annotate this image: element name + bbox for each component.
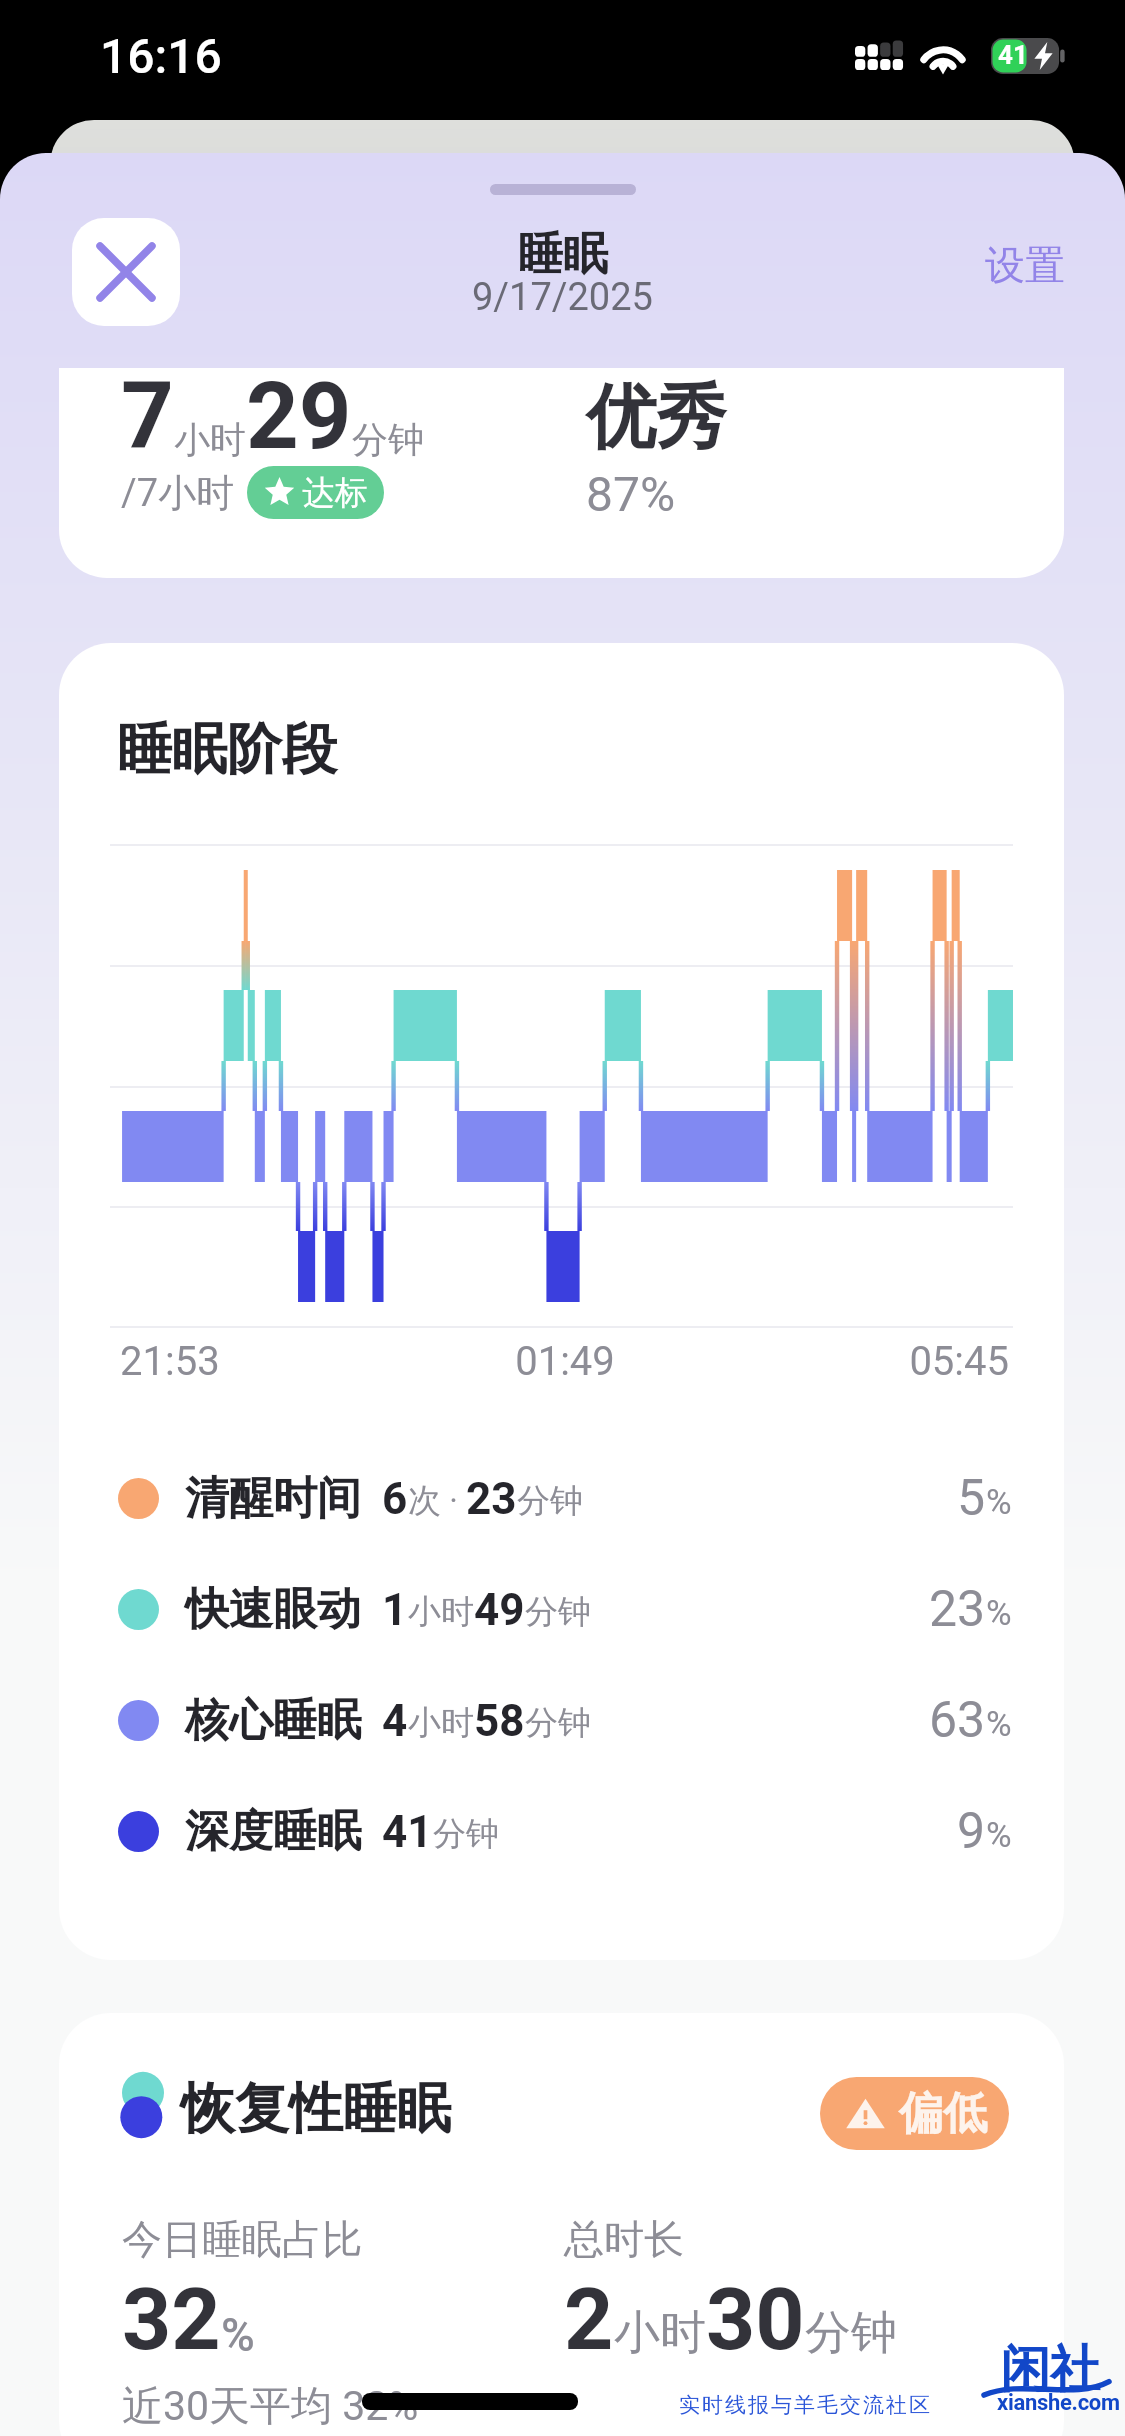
staticText: 清醒时间 [185,1471,361,1526]
staticText: 偏低 [899,2086,987,2141]
staticText: 设置 [985,240,1065,290]
button[interactable]: 偏低 [820,2077,1009,2150]
staticText: 7 [121,368,174,471]
staticText: 63 [929,1691,986,1750]
staticText: 分钟 [433,1813,499,1855]
staticText: 小时 [614,2304,706,2362]
staticText: 达标 [302,472,368,514]
staticText: 87% [586,466,676,522]
button[interactable]: 设置 [985,240,1065,290]
staticText: 睡眠 [518,226,608,283]
staticText: 快速眼动 [185,1582,361,1637]
staticText: 05:45 [713,1338,1009,1385]
staticText: 6 [382,1473,408,1525]
staticText: 近30天平均 32% [122,2381,419,2433]
staticText: 9/17/2025 [472,275,653,320]
button[interactable]: 清醒时间 [59,1443,1064,1554]
staticText: xianshe.com [997,2390,1120,2416]
staticText: 小时 [408,1591,474,1633]
staticText: 41 [382,1806,433,1858]
button[interactable]: Close [72,218,180,326]
staticText: 41 [998,40,1028,70]
staticText: 9 [957,1802,986,1861]
staticText: 分钟 [525,1702,591,1744]
staticText: 今日睡眠占比 [122,2214,362,2264]
staticText: 30 [706,2269,805,2370]
staticText: % [221,2308,255,2362]
staticText: 58 [474,1695,525,1747]
staticText: 次 · [408,1480,466,1522]
staticText: 4 [382,1695,408,1747]
staticText: 分钟 [805,2304,897,2362]
staticText: 23 [929,1580,986,1639]
staticText: 16:16 [100,28,222,84]
staticText: 小时 [408,1702,474,1744]
staticText: 01:49 [417,1338,713,1385]
staticText: 小时 [174,417,246,462]
staticText: 深度睡眠 [185,1804,361,1859]
staticText: /7小时 [121,469,235,517]
staticText: 29 [246,368,352,471]
staticText: 1 [382,1584,408,1636]
staticText: 恢复性睡眠 [181,2075,451,2143]
staticText: 21:53 [120,1338,417,1385]
staticText: 睡眠阶段 [117,715,337,784]
button[interactable]: 7 [59,368,1064,578]
staticText: 闲社 [1000,2338,1100,2401]
staticText: % [986,1815,1012,1856]
staticText: % [986,1704,1012,1745]
staticText: 23 [466,1473,517,1525]
staticText: % [986,1593,1012,1634]
staticText: 实时线报与羊毛交流社区 [678,2392,931,2418]
staticText: 总时长 [564,2214,684,2264]
staticText: 分钟 [352,417,424,462]
button[interactable]: 核心睡眠 [59,1665,1064,1776]
staticText: 分钟 [525,1591,591,1633]
staticText: 核心睡眠 [185,1693,361,1748]
staticText: 2 [564,2269,614,2370]
button[interactable]: 深度睡眠 [59,1776,1064,1887]
staticText: 5 [957,1469,986,1528]
staticText: 49 [474,1584,525,1636]
button[interactable]: 快速眼动 [59,1554,1064,1665]
staticText: 优秀 [586,374,726,462]
staticText: 32 [122,2269,221,2370]
staticText: % [986,1482,1012,1523]
staticText: 分钟 [517,1480,583,1522]
